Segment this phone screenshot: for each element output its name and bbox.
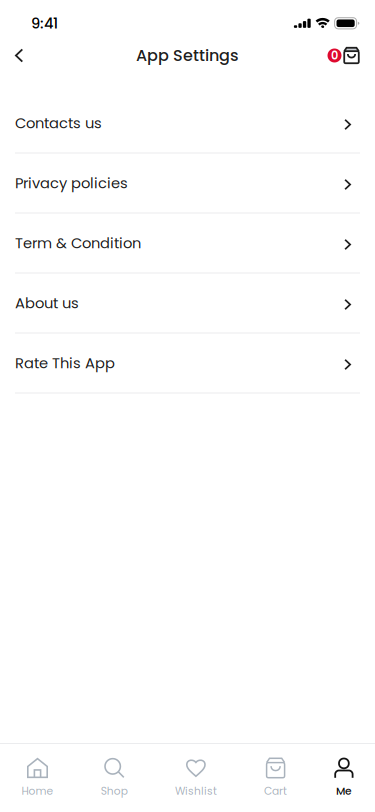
button[interactable]: Cart (264, 744, 287, 812)
staticText: Home (21, 783, 53, 798)
button[interactable]: Privacy policies (0, 153, 375, 213)
staticText: App Settings (136, 44, 239, 67)
button[interactable]: Back (0, 33, 49, 77)
button[interactable]: Shop (101, 744, 128, 812)
button[interactable]: Me (334, 744, 353, 812)
staticText: About us (15, 293, 79, 313)
staticText: Wishlist (175, 783, 217, 798)
staticText: Me (336, 783, 352, 798)
button[interactable]: Home (21, 744, 53, 812)
staticText: 0 (331, 48, 338, 63)
staticText: Cart (264, 783, 287, 798)
button[interactable]: Term & Condition (0, 213, 375, 273)
staticText: Term & Condition (15, 233, 141, 253)
button[interactable]: Rate This App (0, 333, 375, 393)
button[interactable]: Contacts us (0, 93, 375, 153)
staticText: 9:41 (31, 13, 58, 33)
staticText: Contacts us (15, 113, 102, 133)
button[interactable]: About us (0, 273, 375, 333)
staticText: Rate This App (15, 353, 115, 373)
button[interactable]: Wishlist (175, 744, 217, 812)
staticText: Privacy policies (15, 173, 128, 193)
staticText: Shop (101, 783, 128, 798)
button[interactable]: Cart (327, 33, 375, 77)
